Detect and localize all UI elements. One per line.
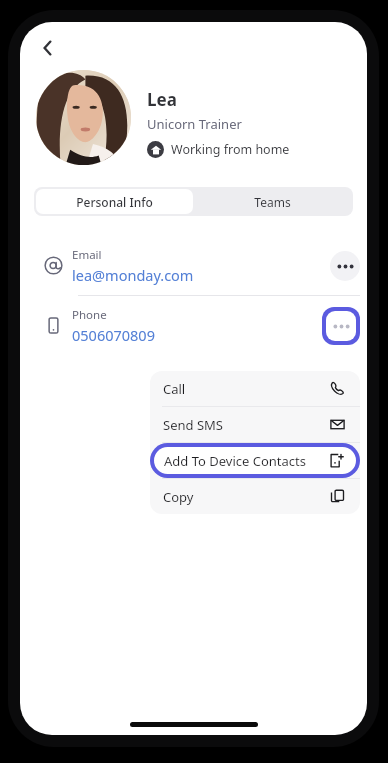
staticText: 0506070809 (72, 325, 155, 345)
button[interactable]: Send SMS (150, 407, 360, 442)
staticText: lea@monday.com (72, 265, 194, 285)
button[interactable]: Call (150, 371, 360, 406)
button[interactable]: Copy (150, 479, 360, 514)
staticText: Personal Info (76, 194, 153, 210)
button[interactable]: Personal Info (36, 189, 193, 214)
staticText: Phone (72, 307, 107, 323)
staticText: Lea (147, 88, 177, 111)
staticText: Call (163, 380, 186, 398)
staticText: Working from home (171, 141, 290, 158)
staticText: Unicorn Trainer (147, 115, 242, 133)
staticText: Send SMS (163, 416, 223, 434)
staticText: Teams (254, 194, 291, 210)
staticText: Email (72, 247, 102, 263)
button[interactable]: Add To Device Contacts (154, 447, 356, 474)
button[interactable]: Back (28, 28, 68, 68)
button[interactable]: Teams (193, 189, 351, 214)
staticText: Add To Device Contacts (164, 452, 306, 470)
staticText: Copy (163, 488, 194, 506)
button[interactable]: Phone options (326, 311, 356, 341)
button[interactable]: Email options (330, 251, 360, 281)
